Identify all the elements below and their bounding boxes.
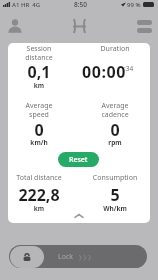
button[interactable]: Slide to lock xyxy=(9,245,147,268)
button[interactable]: Menu xyxy=(133,15,155,37)
button[interactable]: Brand logo xyxy=(73,19,86,33)
staticText: 222,8 xyxy=(0,184,79,206)
staticText: Consumption xyxy=(75,173,155,183)
staticText: 0,1 xyxy=(0,61,79,83)
staticText: :34 xyxy=(124,64,134,73)
button[interactable]: Reset xyxy=(58,152,99,167)
staticText: Total distance xyxy=(0,173,79,183)
staticText: Duration xyxy=(75,44,155,54)
button[interactable]: Profile xyxy=(4,15,26,37)
staticText: 5 xyxy=(75,184,155,206)
staticText: Average speed xyxy=(0,101,79,119)
staticText: 0 xyxy=(75,119,155,141)
staticText: 00:00 xyxy=(82,61,127,83)
staticText: km xyxy=(0,204,79,213)
staticText: Session distance xyxy=(0,44,79,62)
staticText: km/h xyxy=(0,138,79,147)
staticText: Lock xyxy=(58,252,74,262)
staticText: rpm xyxy=(75,138,155,147)
staticText: 0 xyxy=(0,119,79,141)
staticText: ❯❯❯ xyxy=(78,254,92,260)
staticText: Wh/km xyxy=(75,204,155,213)
staticText: 8:50 xyxy=(74,0,87,9)
staticText: Reset xyxy=(69,155,88,165)
staticText: km xyxy=(0,81,79,90)
staticText: Average cadence xyxy=(75,101,155,119)
staticText: 99 % xyxy=(127,1,141,9)
button[interactable]: Expand xyxy=(74,213,84,219)
staticText: A1 HR 4G xyxy=(12,1,41,9)
